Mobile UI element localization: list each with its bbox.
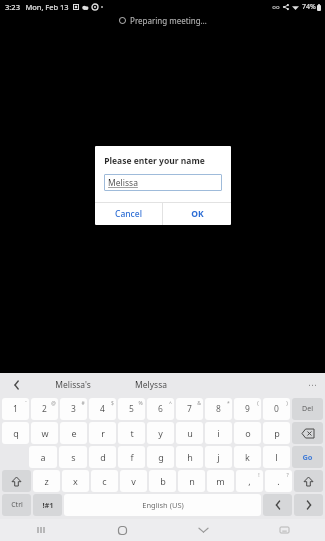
staticText: & bbox=[197, 400, 201, 407]
staticText: s bbox=[71, 451, 76, 463]
staticText: j bbox=[217, 451, 220, 463]
button[interactable]: Recents bbox=[0, 519, 82, 541]
button[interactable]: p bbox=[263, 422, 290, 444]
staticText: b bbox=[160, 475, 166, 487]
staticText: Mon, Feb 13 bbox=[25, 2, 69, 12]
staticText: y bbox=[158, 427, 163, 439]
button[interactable]: i bbox=[205, 422, 232, 444]
staticText: @ bbox=[51, 400, 56, 407]
button[interactable]: h bbox=[176, 446, 203, 468]
button[interactable]: 7 bbox=[176, 398, 203, 420]
staticText: v bbox=[131, 475, 136, 487]
button[interactable]: Hide keyboard bbox=[163, 519, 244, 541]
staticText: ( bbox=[257, 400, 259, 407]
staticText: l bbox=[275, 451, 278, 463]
button[interactable]: Move cursor left bbox=[263, 494, 292, 516]
staticText: e bbox=[71, 427, 77, 439]
staticText: Preparing meeting… bbox=[130, 15, 207, 26]
staticText: q bbox=[13, 427, 19, 439]
button[interactable]: l bbox=[263, 446, 290, 468]
button[interactable]: 6 bbox=[147, 398, 174, 420]
staticText: w bbox=[41, 427, 49, 439]
button[interactable]: w bbox=[31, 422, 58, 444]
staticText: 8 bbox=[216, 403, 221, 415]
staticText: ` bbox=[25, 400, 27, 407]
button[interactable]: s bbox=[59, 446, 87, 468]
staticText: m bbox=[216, 475, 225, 487]
button[interactable]: Shift bbox=[294, 470, 323, 492]
button[interactable]: Go bbox=[292, 446, 323, 468]
staticText: Go bbox=[302, 452, 313, 462]
button[interactable]: 4 bbox=[89, 398, 116, 420]
button[interactable]: 2 bbox=[31, 398, 58, 420]
staticText: t bbox=[130, 427, 134, 439]
staticText: Cancel bbox=[115, 208, 142, 220]
button[interactable]: OK bbox=[163, 203, 231, 225]
button[interactable]: z bbox=[33, 470, 60, 492]
button[interactable]: j bbox=[205, 446, 232, 468]
button[interactable]: x bbox=[62, 470, 89, 492]
staticText: % bbox=[138, 400, 143, 407]
button[interactable]: Del bbox=[292, 398, 323, 420]
button[interactable]: Home bbox=[82, 519, 163, 541]
button[interactable]: English (US) bbox=[64, 494, 261, 516]
button[interactable]: Melyssa bbox=[112, 373, 190, 397]
staticText: 5 bbox=[129, 403, 134, 415]
button[interactable]: y bbox=[147, 422, 174, 444]
staticText: u bbox=[187, 427, 193, 439]
button[interactable]: q bbox=[2, 422, 29, 444]
button[interactable]: 9 bbox=[234, 398, 261, 420]
staticText: 0 bbox=[274, 403, 279, 415]
button[interactable]: f bbox=[118, 446, 145, 468]
staticText: $ bbox=[111, 400, 114, 407]
staticText: 1 bbox=[13, 403, 18, 415]
button[interactable]: , bbox=[236, 470, 263, 492]
staticText: k bbox=[245, 451, 250, 463]
staticText: Melissa's bbox=[55, 379, 91, 391]
button[interactable]: Move cursor right bbox=[294, 494, 323, 516]
staticText: # bbox=[81, 400, 85, 407]
staticText: , bbox=[248, 475, 251, 487]
button[interactable]: More options bbox=[299, 373, 325, 397]
button[interactable]: 8 bbox=[205, 398, 232, 420]
button[interactable]: Melissa's bbox=[34, 373, 112, 397]
button[interactable]: g bbox=[147, 446, 174, 468]
button[interactable]: Cancel bbox=[95, 203, 162, 225]
button[interactable]: Keyboard switcher bbox=[244, 519, 325, 541]
staticText: 3 bbox=[71, 403, 76, 415]
button[interactable]: 0 bbox=[263, 398, 290, 420]
button[interactable]: r bbox=[89, 422, 116, 444]
button[interactable]: d bbox=[89, 446, 116, 468]
button[interactable]: n bbox=[178, 470, 205, 492]
button[interactable]: m bbox=[207, 470, 234, 492]
button[interactable]: !#1 bbox=[33, 494, 62, 516]
button[interactable]: 3 bbox=[60, 398, 87, 420]
staticText: !#1 bbox=[42, 500, 54, 510]
button[interactable]: Previous suggestions bbox=[0, 373, 34, 397]
button[interactable]: Shift bbox=[2, 470, 31, 492]
button[interactable]: e bbox=[60, 422, 87, 444]
staticText: Del bbox=[302, 404, 313, 414]
staticText: p bbox=[274, 427, 280, 439]
button[interactable]: Ctrl bbox=[2, 494, 31, 516]
staticText: 7 bbox=[187, 403, 192, 415]
button[interactable]: o bbox=[234, 422, 261, 444]
staticText: ) bbox=[286, 400, 288, 407]
staticText: oo bbox=[272, 3, 280, 11]
button[interactable]: . bbox=[265, 470, 292, 492]
staticText: ? bbox=[286, 472, 289, 479]
button[interactable]: u bbox=[176, 422, 203, 444]
button[interactable]: Melissa bbox=[104, 174, 222, 191]
button[interactable]: 5 bbox=[118, 398, 145, 420]
staticText: h bbox=[187, 451, 193, 463]
button[interactable]: c bbox=[91, 470, 118, 492]
button[interactable]: k bbox=[234, 446, 261, 468]
staticText: a bbox=[40, 451, 46, 463]
button[interactable]: 1 bbox=[2, 398, 29, 420]
button[interactable]: b bbox=[149, 470, 176, 492]
button[interactable]: Backspace bbox=[292, 422, 323, 444]
button[interactable]: a bbox=[29, 446, 57, 468]
button[interactable]: v bbox=[120, 470, 147, 492]
staticText: Please enter your name bbox=[104, 155, 205, 167]
button[interactable]: t bbox=[118, 422, 145, 444]
